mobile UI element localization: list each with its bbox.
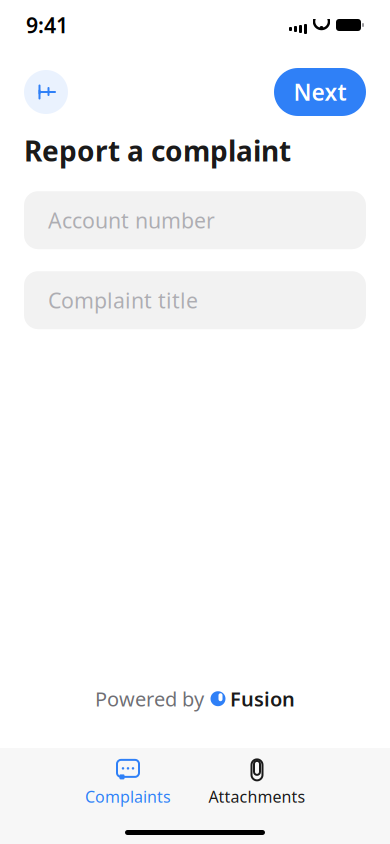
staticText: Complaint title [48, 286, 198, 314]
button[interactable]: Next [274, 68, 366, 116]
staticText: Next [293, 77, 346, 107]
staticText: Attachments [208, 786, 305, 807]
button[interactable]: Back [24, 70, 68, 114]
staticText: Complaints [85, 786, 171, 807]
staticText: Fusion [230, 685, 295, 712]
staticText: Powered by [95, 685, 204, 712]
button[interactable]: Attachments [205, 760, 309, 806]
staticText: Report a complaint [24, 132, 291, 169]
staticText: Account number [48, 206, 215, 234]
button[interactable]: Complaints [81, 760, 175, 806]
staticText: 9:41 [26, 11, 68, 39]
